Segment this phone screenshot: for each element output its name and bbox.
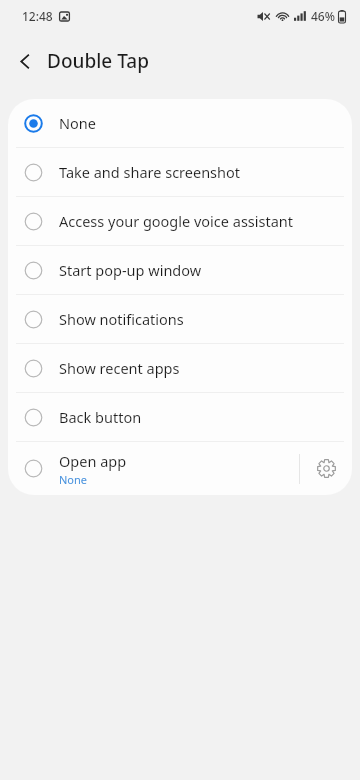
staticText: Double Tap bbox=[47, 48, 149, 74]
button[interactable]: Access your google voice assistant bbox=[8, 197, 352, 245]
staticText: 46% bbox=[311, 8, 335, 24]
staticText: Access your google voice assistant bbox=[59, 211, 294, 231]
staticText: 12:48 bbox=[22, 8, 53, 24]
button[interactable]: Show notifications bbox=[8, 295, 352, 343]
staticText: Show recent apps bbox=[59, 358, 180, 378]
staticText: None bbox=[59, 113, 96, 133]
button[interactable]: Open app settings bbox=[300, 442, 352, 495]
staticText: Start pop-up window bbox=[59, 260, 202, 280]
staticText: Open app bbox=[59, 451, 127, 471]
staticText: Take and share screenshot bbox=[59, 162, 241, 182]
button[interactable]: Start pop-up window bbox=[8, 246, 352, 294]
button[interactable]: Open app bbox=[8, 442, 352, 495]
button[interactable]: Back bbox=[7, 43, 44, 80]
button[interactable]: Take and share screenshot bbox=[8, 148, 352, 196]
staticText: Back button bbox=[59, 407, 142, 427]
staticText: None bbox=[59, 472, 88, 487]
staticText: Show notifications bbox=[59, 309, 184, 329]
button[interactable]: None bbox=[8, 99, 352, 147]
button[interactable]: Show recent apps bbox=[8, 344, 352, 392]
button[interactable]: Back button bbox=[8, 393, 352, 441]
